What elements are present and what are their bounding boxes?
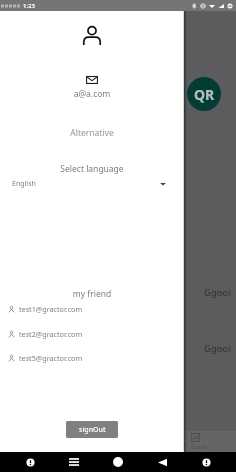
staticText: my friend — [0, 288, 184, 300]
button[interactable]: test1@gractor.com — [9, 301, 184, 317]
staticText: signOut — [79, 425, 106, 435]
staticText: Ggool — [204, 342, 231, 355]
button[interactable]: English — [12, 176, 166, 191]
staticText: a@a.com — [0, 88, 184, 100]
button[interactable]: test5@gractor.com — [9, 350, 184, 366]
button[interactable]: Back — [157, 452, 167, 472]
staticText: 1:23 — [23, 2, 35, 10]
staticText: test2@gractor.com — [19, 329, 83, 339]
staticText: Select language — [0, 163, 184, 175]
button[interactable]: signOut — [66, 421, 118, 438]
button[interactable]: Notifications — [25, 452, 35, 472]
staticText: Ggool — [204, 286, 231, 299]
staticText: English — [12, 179, 36, 189]
button[interactable]: QR code — [187, 77, 221, 111]
button[interactable]: test2@gractor.com — [9, 326, 184, 342]
button[interactable]: Home — [113, 452, 123, 472]
staticText: QR — [194, 85, 215, 104]
staticText: test1@gractor.com — [19, 304, 83, 314]
button[interactable]: Recent apps — [69, 452, 79, 472]
button[interactable]: Notifications — [201, 452, 211, 472]
staticText: test5@gractor.com — [19, 353, 83, 363]
staticText: Statistics — [191, 444, 210, 450]
staticText: Alternative — [0, 127, 184, 139]
